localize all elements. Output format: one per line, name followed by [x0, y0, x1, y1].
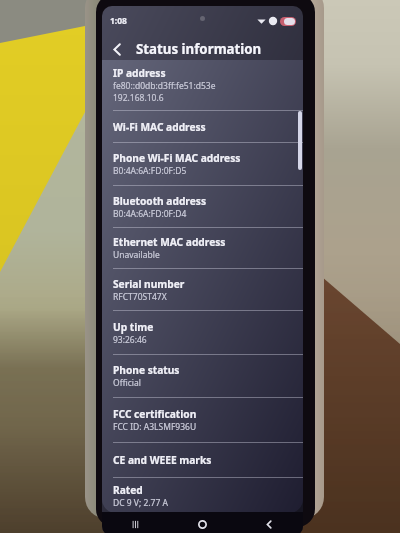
staticText: Status information — [136, 40, 262, 58]
button[interactable]: IP address — [102, 60, 303, 110]
staticText: Phone status — [113, 363, 180, 377]
staticText: 192.168.10.6 — [113, 92, 164, 104]
button[interactable]: Rated — [102, 478, 303, 513]
button[interactable]: Back — [236, 512, 303, 533]
button[interactable]: FCC certification — [102, 398, 303, 442]
button[interactable]: Phone status — [102, 355, 303, 397]
staticText: RFCT70ST47X — [113, 291, 167, 303]
button[interactable]: Phone Wi-Fi MAC address — [102, 143, 303, 185]
staticText: FCC certification — [113, 407, 197, 421]
staticText: Official — [113, 377, 141, 389]
staticText: 93:26:46 — [113, 334, 147, 346]
staticText: Ethernet MAC address — [113, 235, 226, 249]
staticText: Bluetooth address — [113, 194, 207, 208]
staticText: CE and WEEE marks — [113, 453, 212, 467]
staticText: B0:4A:6A:FD:0F:D5 — [113, 165, 187, 177]
staticText: Phone Wi-Fi MAC address — [113, 151, 241, 165]
staticText: B0:4A:6A:FD:0F:D4 — [113, 208, 187, 220]
button[interactable]: Serial number — [102, 269, 303, 310]
button[interactable]: Back — [102, 35, 132, 63]
button[interactable]: Home — [169, 512, 236, 533]
button[interactable]: CE and WEEE marks — [102, 443, 303, 477]
staticText: Wi-Fi MAC address — [113, 120, 206, 134]
staticText: FCC ID: A3LSMF936U — [113, 421, 197, 433]
button[interactable]: Recents — [102, 512, 169, 533]
staticText: DC 9 V; 2.77 A — [113, 497, 168, 509]
staticText: Up time — [113, 320, 154, 334]
button[interactable]: Ethernet MAC address — [102, 228, 303, 268]
staticText: fe80::d0db:d3ff:fe51:d53e — [113, 80, 216, 92]
button[interactable]: Wi-Fi MAC address — [102, 111, 303, 142]
staticText: 1:08 — [110, 15, 127, 27]
staticText: Rated — [113, 483, 143, 497]
staticText: Unavailable — [113, 249, 160, 261]
staticText: IP address — [113, 66, 166, 80]
staticText: Serial number — [113, 277, 185, 291]
button[interactable]: Bluetooth address — [102, 186, 303, 227]
button[interactable]: Up time — [102, 311, 303, 354]
